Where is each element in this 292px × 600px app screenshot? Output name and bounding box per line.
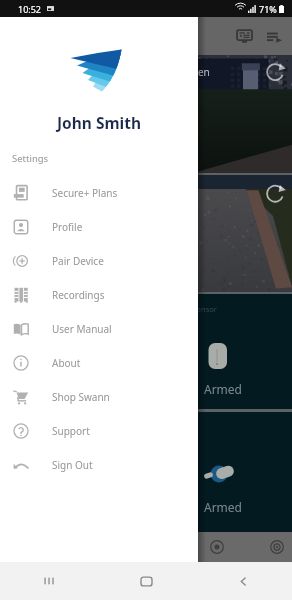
staticText: Sign Out	[52, 458, 93, 472]
button[interactable]: User Manual	[0, 312, 198, 346]
staticText: John Smith	[0, 112, 198, 133]
button[interactable]: Support	[0, 414, 198, 448]
button[interactable]: Recents	[0, 562, 98, 600]
staticText: Shop Swann	[52, 390, 110, 404]
staticText: Armed	[204, 499, 242, 515]
button[interactable]: Sign Out	[0, 448, 198, 482]
staticText: Support	[52, 424, 90, 438]
button[interactable]: Profile	[0, 210, 198, 244]
button[interactable]	[0, 175, 292, 292]
staticText: Garden	[175, 65, 210, 79]
button[interactable]: About	[0, 346, 198, 380]
staticText: Pair Device	[52, 254, 104, 268]
button[interactable]: Shop Swann	[0, 380, 198, 414]
button[interactable]: Home	[98, 562, 195, 600]
staticText: Secure+ Plans	[52, 186, 118, 200]
button[interactable]: Settings	[262, 532, 292, 562]
button[interactable]: Devices	[202, 532, 232, 562]
staticText: User Manual	[52, 322, 112, 336]
staticText: Armed	[204, 381, 242, 397]
button[interactable]: Recordings	[0, 278, 198, 312]
button[interactable]: Garden	[0, 55, 292, 173]
button[interactable]: Playlist	[263, 25, 285, 47]
staticText: Recordings	[52, 288, 105, 302]
staticText: 71%	[259, 3, 277, 15]
staticText: Door / Window Sensor	[138, 304, 217, 314]
button[interactable]: Back	[195, 562, 292, 600]
button[interactable]: Secure+ Plans	[0, 176, 198, 210]
staticText: Settings	[12, 152, 49, 165]
staticText: 10:52	[18, 3, 42, 15]
button[interactable]: Live view	[233, 25, 255, 47]
staticText: About	[52, 356, 81, 370]
button[interactable]: Armed	[0, 412, 292, 532]
staticText: Profile	[52, 220, 83, 234]
button[interactable]: Door / Window Sensor	[0, 294, 292, 409]
button[interactable]: Pair Device	[0, 244, 198, 278]
